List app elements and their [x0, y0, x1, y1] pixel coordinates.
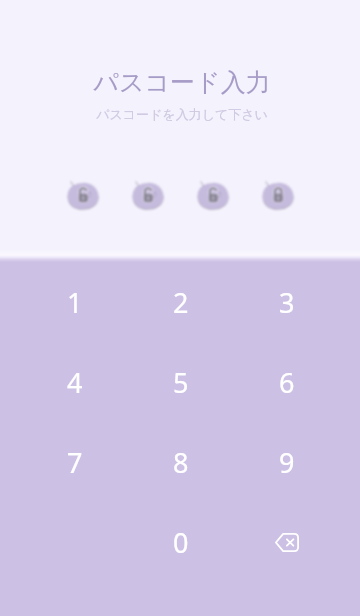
staticText: 3 — [279, 284, 295, 321]
staticText: 6 — [279, 364, 295, 401]
button[interactable]: 3 — [234, 262, 340, 342]
button[interactable]: 2 — [128, 262, 234, 342]
button[interactable]: 4 — [22, 342, 128, 422]
staticText: パスコード入力 — [93, 67, 271, 98]
button[interactable]: 7 — [22, 422, 128, 502]
staticText: パスコードを入力して下さい — [96, 106, 268, 122]
button[interactable]: 5 — [128, 342, 234, 422]
other: Delete — [275, 533, 299, 552]
staticText: 7 — [67, 444, 83, 481]
staticText: 2 — [173, 284, 189, 321]
staticText: 8 — [173, 444, 189, 481]
staticText: 5 — [173, 364, 189, 401]
staticText: 4 — [67, 364, 83, 401]
staticText: 1 — [67, 284, 83, 321]
button[interactable]: Delete — [234, 502, 340, 582]
button[interactable]: 9 — [234, 422, 340, 502]
button[interactable]: 6 — [234, 342, 340, 422]
staticText: 0 — [173, 524, 189, 561]
button[interactable]: 0 — [128, 502, 234, 582]
button[interactable]: 1 — [22, 262, 128, 342]
button[interactable]: 8 — [128, 422, 234, 502]
staticText: 9 — [279, 444, 295, 481]
